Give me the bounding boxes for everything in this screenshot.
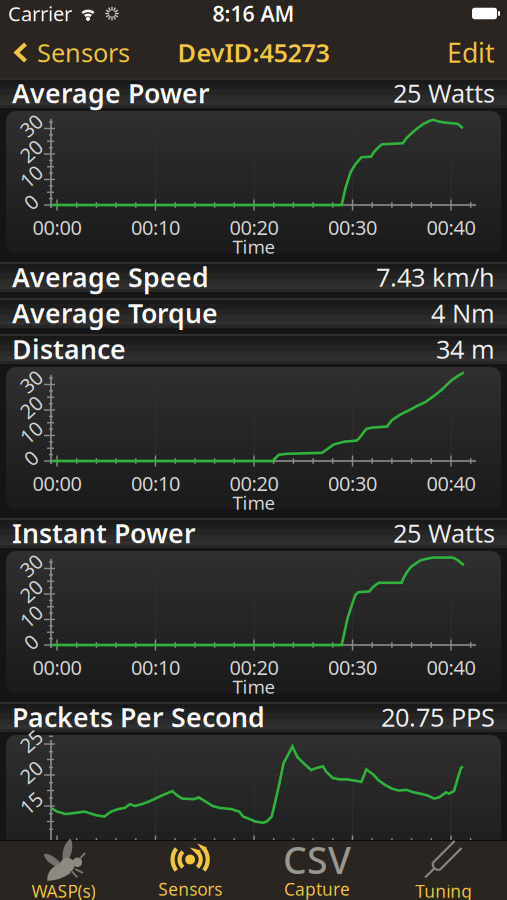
staticText: 15: [20, 790, 42, 816]
staticText: 20: [20, 759, 42, 785]
staticText: 10: [20, 419, 42, 446]
staticText: DevID:45273: [177, 36, 329, 69]
staticText: 00:30: [328, 654, 377, 681]
button[interactable]: Capture: [253, 840, 380, 900]
button[interactable]: Sensors: [127, 840, 254, 900]
staticText: Time: [232, 234, 275, 259]
staticText: 00:40: [426, 470, 475, 497]
staticText: 00:20: [229, 654, 278, 681]
staticText: 00:10: [131, 470, 180, 497]
staticText: 00:40: [426, 654, 475, 681]
staticText: 20: [20, 138, 42, 164]
staticText: WASP(s): [31, 879, 95, 900]
staticText: 0: [25, 445, 36, 471]
staticText: Carrier: [8, 0, 72, 27]
staticText: Sensors: [37, 36, 130, 69]
staticText: 00:10: [131, 214, 180, 241]
staticText: 0: [25, 629, 36, 655]
staticText: 0: [25, 189, 36, 215]
button[interactable]: Tuning: [380, 840, 507, 900]
button[interactable]: Back to Sensors: [0, 36, 130, 69]
staticText: Time: [232, 674, 275, 699]
staticText: 00:00: [32, 470, 81, 497]
staticText: 8:16 AM: [212, 0, 294, 28]
staticText: Average Power: [12, 75, 210, 111]
staticText: 10: [20, 163, 42, 190]
staticText: 30: [20, 112, 42, 139]
staticText: 34 m: [436, 332, 495, 366]
staticText: 20: [20, 394, 42, 420]
staticText: Time: [232, 490, 275, 515]
staticText: CSV: [283, 835, 351, 884]
staticText: Average Speed: [12, 259, 209, 295]
staticText: Packets Per Second: [12, 699, 265, 735]
staticText: Instant Power: [12, 515, 196, 551]
staticText: 00:30: [328, 214, 377, 241]
staticText: Sensors: [158, 877, 222, 900]
button[interactable]: Edit: [447, 35, 507, 70]
staticText: 00:10: [131, 654, 180, 681]
staticText: 7.43 km/h: [376, 260, 495, 294]
staticText: 00:30: [328, 470, 377, 497]
staticText: 00:00: [32, 214, 81, 241]
staticText: 00:40: [426, 214, 475, 241]
staticText: 00:20: [229, 470, 278, 497]
staticText: Capture: [284, 877, 350, 900]
staticText: 20.75 PPS: [381, 700, 495, 734]
staticText: 25: [20, 728, 42, 754]
staticText: 20: [20, 578, 42, 604]
staticText: 10: [20, 603, 42, 630]
button[interactable]: WASP(s): [0, 840, 127, 900]
staticText: 30: [20, 368, 42, 395]
staticText: 00:00: [32, 654, 81, 681]
staticText: Tuning: [415, 879, 472, 900]
staticText: 30: [20, 552, 42, 579]
staticText: Edit: [447, 35, 495, 70]
staticText: Average Torque: [12, 295, 218, 331]
staticText: Distance: [12, 331, 126, 367]
staticText: 25 Watts: [393, 76, 495, 110]
staticText: 00:20: [229, 214, 278, 241]
staticText: 25 Watts: [393, 516, 495, 550]
staticText: 4 Nm: [431, 296, 495, 330]
